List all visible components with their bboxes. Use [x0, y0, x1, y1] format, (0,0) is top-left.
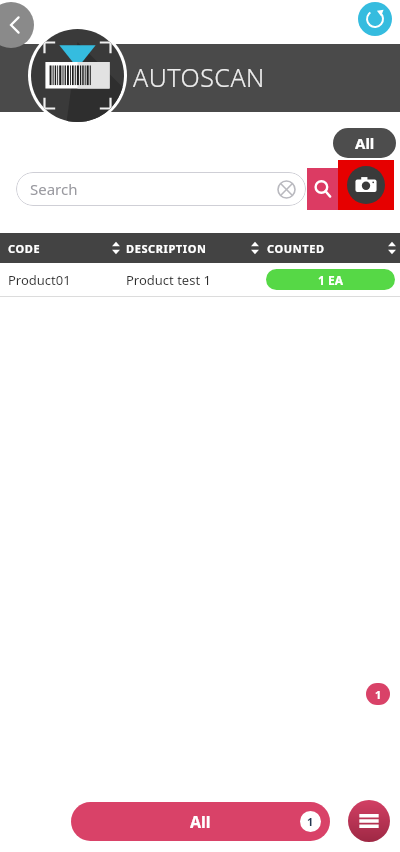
button[interactable]: Back	[0, 2, 34, 48]
staticText: All	[190, 811, 211, 833]
button[interactable]: Refresh	[358, 2, 392, 36]
staticText: 1	[307, 814, 314, 829]
button[interactable]: Search	[16, 172, 306, 206]
button[interactable]: Scan with camera	[338, 160, 394, 210]
staticText: Product01	[8, 271, 71, 289]
button[interactable]: Sort	[386, 237, 398, 259]
button[interactable]: Menu	[348, 800, 390, 842]
staticText: Product test 1	[126, 271, 211, 289]
button[interactable]: Autoscan logo	[28, 26, 127, 125]
button[interactable]: Clear search	[277, 180, 296, 199]
staticText: Search	[30, 179, 78, 199]
staticText: COUNTED	[267, 241, 325, 256]
staticText: All	[355, 133, 375, 153]
button[interactable]: All	[71, 802, 330, 841]
button[interactable]: Sort	[110, 237, 122, 259]
staticText: CODE	[8, 241, 41, 256]
button[interactable]: Sort	[249, 237, 261, 259]
staticText: DESCRIPTION	[126, 241, 207, 256]
staticText: AUTOSCAN	[133, 60, 265, 94]
button[interactable]: AUTOSCAN	[133, 60, 265, 94]
staticText: 1 EA	[318, 272, 344, 288]
button[interactable]: All	[333, 128, 396, 158]
button[interactable]: 1	[366, 683, 390, 705]
button[interactable]: Product01	[0, 263, 400, 296]
staticText: 1	[375, 687, 382, 702]
button[interactable]: Search	[307, 168, 338, 210]
